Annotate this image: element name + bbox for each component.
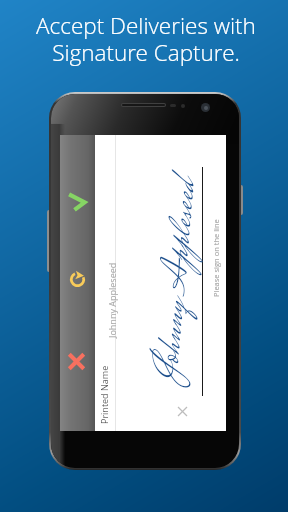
button[interactable]: Clear field	[178, 407, 187, 416]
staticText: Johnny Appleseed	[142, 178, 218, 387]
button[interactable]: Accept signature	[68, 193, 86, 211]
staticText: Printed Name	[98, 365, 110, 424]
staticText: Accept Deliveries with Signature Capture…	[2, 10, 288, 68]
button[interactable]: Clear signature	[68, 270, 87, 289]
button[interactable]: Cancel	[67, 352, 86, 371]
staticText: Johnny Appleseed	[106, 262, 118, 338]
staticText: Please sign on the line	[211, 219, 221, 297]
